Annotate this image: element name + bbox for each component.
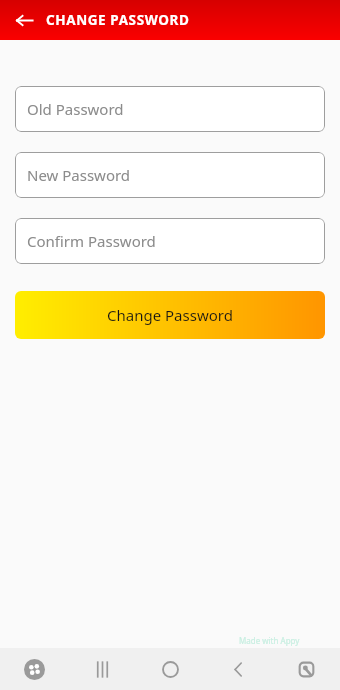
button[interactable]: Confirm Password <box>15 218 325 264</box>
staticText: Old Password <box>27 99 124 119</box>
button[interactable]: Recents <box>68 648 136 690</box>
staticText: CHANGE PASSWORD <box>46 11 190 29</box>
button[interactable]: Back <box>204 648 272 690</box>
button[interactable]: Change Password <box>15 291 325 339</box>
staticText: Change Password <box>107 305 233 325</box>
button[interactable]: New Password <box>15 152 325 198</box>
button[interactable]: Back <box>6 2 42 38</box>
button[interactable]: Home <box>136 648 204 690</box>
button[interactable]: Screen capture <box>272 648 340 690</box>
button[interactable]: Old Password <box>15 86 325 132</box>
staticText: New Password <box>27 165 131 185</box>
staticText: Made with Appy <box>239 635 300 646</box>
button[interactable]: Game tools <box>0 648 68 690</box>
staticText: Confirm Password <box>27 231 156 251</box>
